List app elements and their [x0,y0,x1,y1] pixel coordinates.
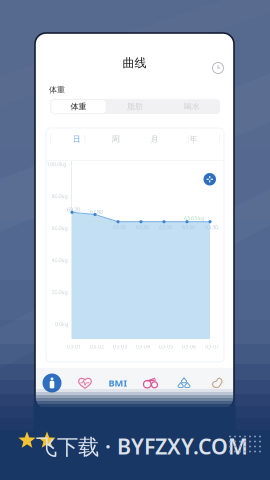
button[interactable]: Water intake [167,368,200,398]
staticText: 体重 [49,85,65,95]
staticText: 03-04 [136,343,150,350]
staticText: 80.0kg [51,193,67,200]
button[interactable]: 月 [135,129,174,149]
staticText: 63.63 kg [184,215,204,222]
button[interactable]: Body composition [35,368,68,398]
button[interactable]: Body measurements [134,368,167,398]
staticText: 20.0kg [51,289,67,296]
staticText: 63.30 [113,224,126,231]
button[interactable]: 喝水 [163,99,220,114]
staticText: 0.0kg [55,321,68,328]
button[interactable]: BMI [101,368,134,398]
staticText: 67.80 [90,208,103,215]
button[interactable]: 日 [57,129,96,149]
button[interactable]: 体重 [51,100,106,113]
staticText: 飞下载 · BYFZXY.COM [36,432,248,460]
staticText: 63.30 [159,224,172,231]
staticText: 03-01 [67,343,81,350]
staticText: BMI [108,377,127,389]
button[interactable]: 周 [96,129,135,149]
staticText: 喝水 [184,102,200,111]
staticText: 周 [111,134,119,144]
button[interactable]: Heart rate [68,368,101,398]
staticText: 03-05 [159,343,173,350]
button[interactable]: 年 [174,129,213,149]
button[interactable]: Fullscreen [203,173,216,185]
staticText: 03-03 [113,343,127,350]
button[interactable]: 脂肪 [107,99,163,114]
staticText: 年 [189,134,197,144]
staticText: 03-07 [205,343,219,350]
staticText: 月 [150,134,158,144]
button[interactable]: History [207,57,228,78]
staticText: 03-02 [90,343,104,350]
staticText: 03-06 [182,343,196,350]
staticText: 体重 [70,102,86,111]
staticText: 63.30 [182,224,195,231]
staticText: 脂肪 [127,102,143,111]
staticText: 69.20 [67,206,80,213]
staticText: 100.0kg [47,161,66,168]
staticText: 63.30 [136,224,149,231]
staticText: 曲线 [122,56,146,70]
staticText: 63.30 [205,224,218,231]
staticText: 60.0kg [51,225,67,232]
staticText: 40.0kg [51,257,67,264]
staticText: 日 [72,134,80,144]
button[interactable]: Pregnancy [200,368,233,398]
